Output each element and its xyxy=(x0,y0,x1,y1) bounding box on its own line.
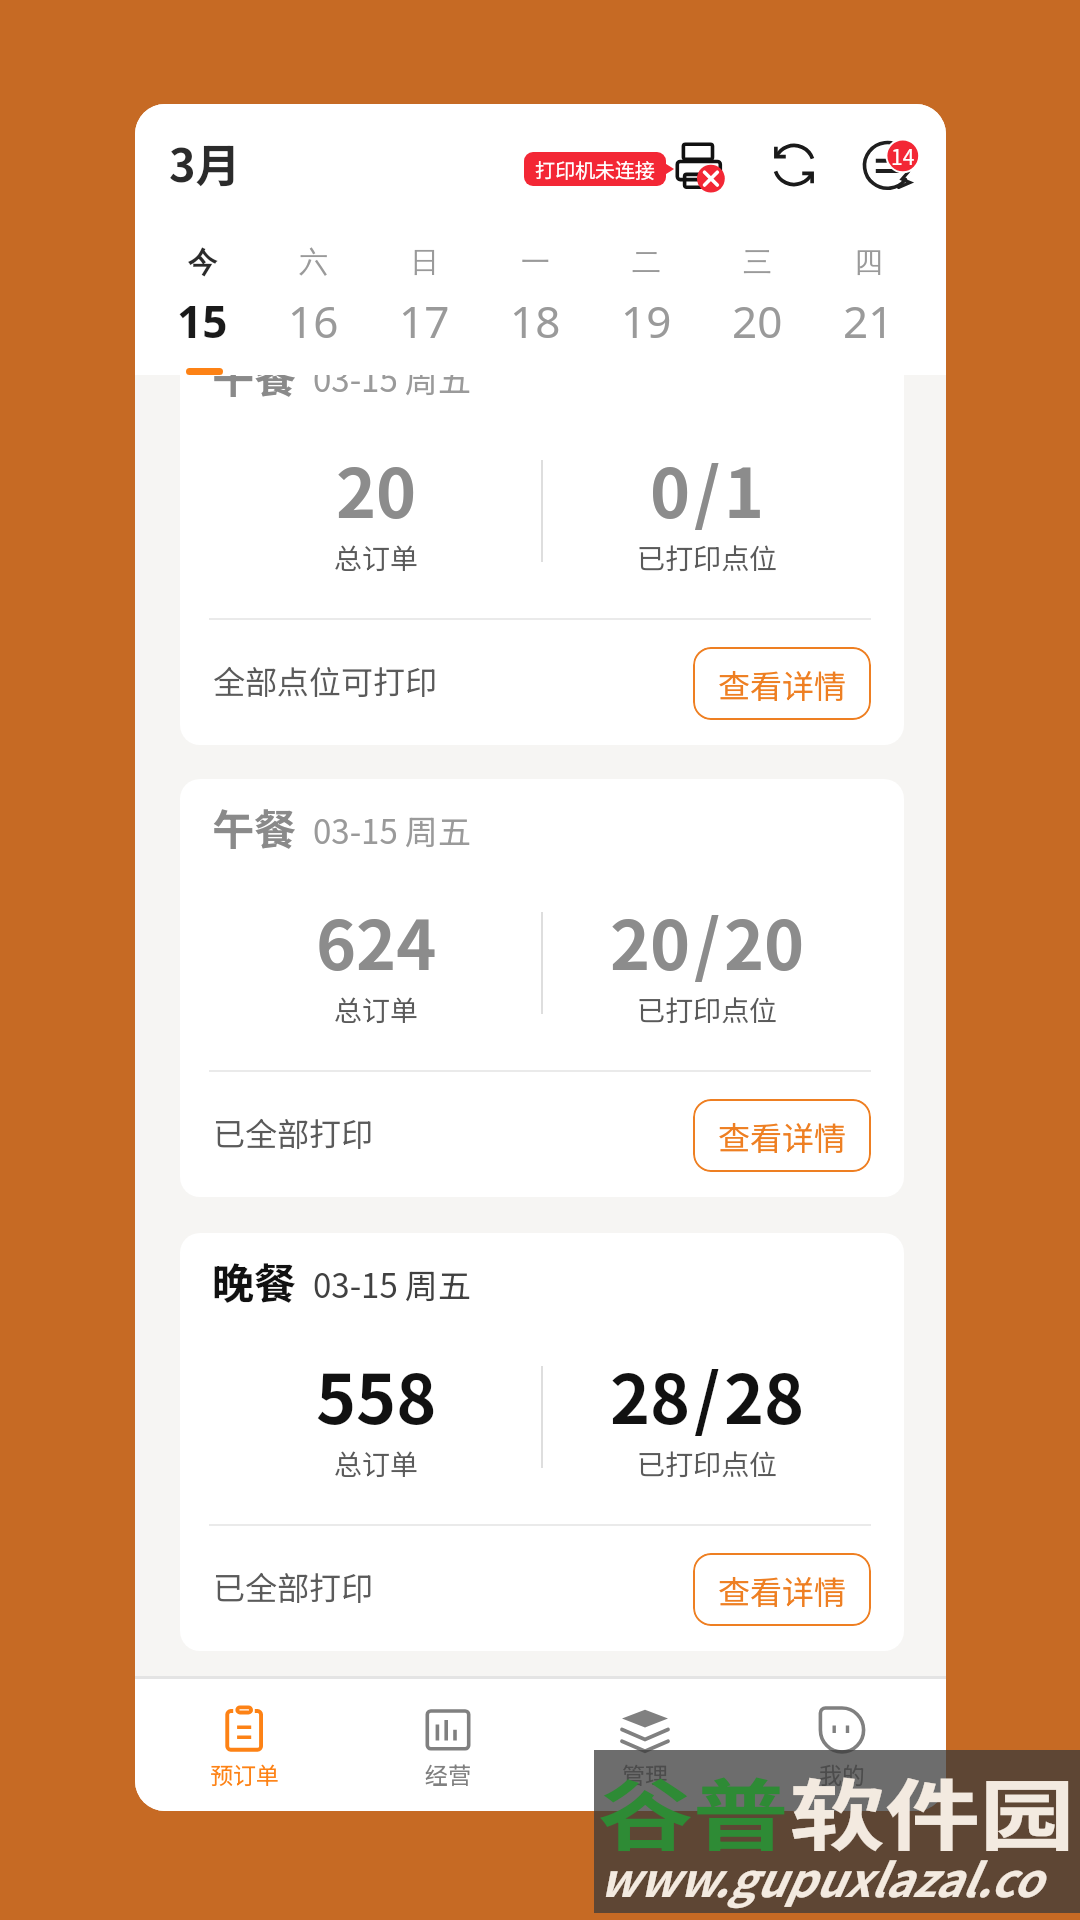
staticText: 今 xyxy=(188,244,217,281)
staticText: 已全部打印 xyxy=(213,1109,374,1155)
staticText: 已打印点位 xyxy=(637,989,778,1030)
button[interactable]: 查看详情 xyxy=(693,1099,871,1172)
staticText: 19 xyxy=(621,291,672,351)
button[interactable]: 管理 xyxy=(555,1681,735,1809)
button[interactable]: 查看详情 xyxy=(693,647,871,720)
staticText: 03-15 周五 xyxy=(313,1260,472,1308)
staticText: 20 xyxy=(732,291,783,351)
staticText: 3月 xyxy=(169,130,241,195)
button[interactable]: 晚餐 xyxy=(180,1233,904,1651)
button[interactable]: 午餐 xyxy=(180,779,904,1197)
button[interactable]: 打印机未连接 xyxy=(524,152,666,186)
staticText: 一 xyxy=(521,244,550,281)
staticText: 21 xyxy=(843,291,894,351)
staticText: 午餐 xyxy=(212,375,297,405)
staticText: 03-15 周五 xyxy=(313,375,472,402)
staticText: 28 xyxy=(724,1345,805,1443)
staticText: 三 xyxy=(743,244,772,281)
staticText: / xyxy=(694,891,721,989)
staticText: 午餐 xyxy=(212,796,297,857)
staticText: 17 xyxy=(399,291,450,351)
staticText: 查看详情 xyxy=(718,1567,847,1613)
staticText: 日 xyxy=(410,244,439,281)
button[interactable]: 午餐 xyxy=(180,375,904,745)
button[interactable]: Printer status xyxy=(675,142,727,194)
button[interactable]: 一 xyxy=(480,244,591,351)
staticText: 总订单 xyxy=(334,1443,419,1484)
staticText: 打印机未连接 xyxy=(535,155,655,184)
staticText: 624 xyxy=(316,891,437,989)
staticText: 经营 xyxy=(425,1757,471,1790)
button[interactable]: 三 xyxy=(702,244,813,351)
staticText: 16 xyxy=(288,291,339,351)
staticText: 已打印点位 xyxy=(637,537,778,578)
staticText: 查看详情 xyxy=(718,661,847,707)
staticText: 总订单 xyxy=(334,989,419,1030)
staticText: 晚餐 xyxy=(212,1250,297,1311)
staticText: 我的 xyxy=(819,1757,865,1790)
staticText: 谷普 xyxy=(598,1754,789,1867)
staticText: 14 xyxy=(891,141,915,171)
staticText: 四 xyxy=(854,244,883,281)
staticText: 03-15 周五 xyxy=(313,806,472,854)
staticText: 已全部打印 xyxy=(213,1563,374,1609)
button[interactable]: 预订单 xyxy=(154,1681,334,1809)
staticText: 总订单 xyxy=(334,537,419,578)
button[interactable]: Messages xyxy=(862,138,920,196)
button[interactable]: 查看详情 xyxy=(693,1553,871,1626)
staticText: 二 xyxy=(632,244,661,281)
staticText: 预订单 xyxy=(210,1757,279,1790)
staticText: www.gupuxlazal.com xyxy=(598,1844,1080,1920)
staticText: 软件园 xyxy=(789,1754,1076,1867)
staticText: 0 xyxy=(650,439,691,537)
staticText: 15 xyxy=(177,291,228,351)
staticText: 1 xyxy=(724,439,765,537)
staticText: 20 xyxy=(336,439,417,537)
button[interactable]: 我的 xyxy=(752,1681,932,1809)
staticText: / xyxy=(694,1345,721,1443)
button[interactable]: 六 xyxy=(258,244,369,351)
staticText: 已打印点位 xyxy=(637,1443,778,1484)
staticText: 558 xyxy=(316,1345,437,1443)
button[interactable]: 日 xyxy=(369,244,480,351)
button[interactable]: Refresh xyxy=(769,140,819,190)
staticText: 全部点位可打印 xyxy=(213,657,438,703)
button[interactable]: 二 xyxy=(591,244,702,351)
staticText: / xyxy=(694,439,721,537)
staticText: 管理 xyxy=(622,1757,668,1790)
staticText: 查看详情 xyxy=(718,1113,847,1159)
button[interactable]: 四 xyxy=(813,244,924,351)
staticText: 20 xyxy=(724,891,805,989)
staticText: 18 xyxy=(510,291,561,351)
button[interactable]: 经营 xyxy=(358,1681,538,1809)
staticText: 六 xyxy=(299,244,328,281)
button[interactable]: 今 xyxy=(147,244,258,351)
staticText: 20 xyxy=(610,891,691,989)
staticText: 28 xyxy=(610,1345,691,1443)
